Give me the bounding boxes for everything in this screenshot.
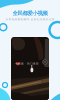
staticText: 全民都爱小视频 — [12, 10, 47, 17]
staticText: 小视频 · 热门推荐 — [15, 62, 39, 65]
staticText: 分享你的精彩瞬间 记录生活美好点滴 — [5, 18, 54, 21]
